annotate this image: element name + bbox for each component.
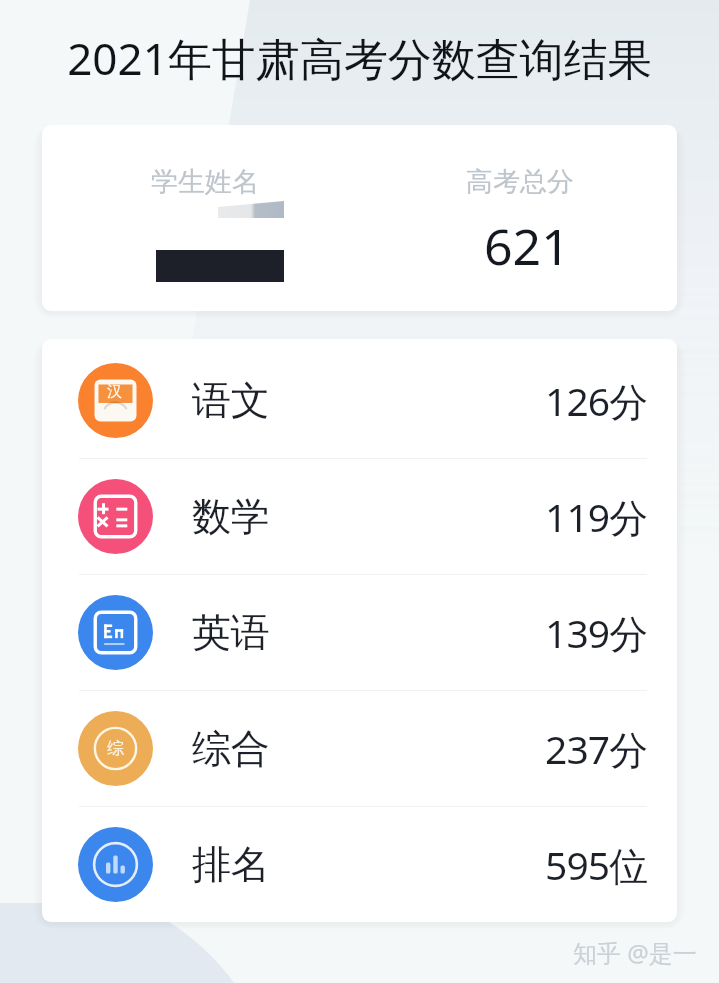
button[interactable]: 数学 xyxy=(42,459,677,574)
staticText: 英语 xyxy=(192,608,270,657)
staticText: 595位 xyxy=(545,838,648,891)
staticText: 237分 xyxy=(545,722,648,775)
button[interactable]: 英语 xyxy=(42,575,677,690)
staticText: 2021年甘肃高考分数查询结果 xyxy=(0,28,719,88)
staticText: 126分 xyxy=(545,374,648,427)
staticText: 汉 xyxy=(107,382,122,401)
staticText: 139分 xyxy=(545,606,648,659)
staticText: 数学 xyxy=(192,492,270,541)
staticText: 119分 xyxy=(545,490,648,543)
button[interactable]: 汉 xyxy=(42,343,677,458)
staticText: 621 xyxy=(484,212,570,280)
button[interactable]: 综 xyxy=(42,691,677,806)
staticText: 排名 xyxy=(192,840,270,889)
button[interactable]: 排名 xyxy=(42,807,677,922)
staticText: 语文 xyxy=(192,376,270,425)
staticText: 综 xyxy=(107,738,124,759)
staticText: 高考总分 xyxy=(466,165,574,199)
staticText: 综合 xyxy=(192,724,270,773)
staticText: 知乎 @是一 xyxy=(573,936,697,969)
staticText: 学生姓名 xyxy=(151,165,259,199)
